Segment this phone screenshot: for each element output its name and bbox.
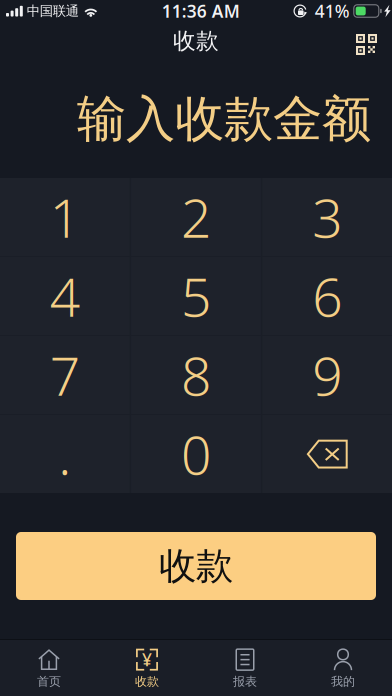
button[interactable]: 我的	[294, 638, 392, 696]
staticText: 11:36 AM	[162, 0, 240, 22]
button[interactable]: 首页	[0, 638, 98, 696]
button[interactable]: 8	[131, 336, 261, 414]
button[interactable]: ¥	[98, 638, 196, 696]
staticText: 8	[181, 340, 211, 410]
button[interactable]: 7	[0, 336, 130, 414]
staticText: 首页	[37, 674, 61, 689]
button[interactable]: 3	[262, 178, 392, 256]
button[interactable]: 1	[0, 178, 130, 256]
staticText: 1	[50, 182, 80, 252]
staticText: 收款	[135, 674, 159, 689]
button[interactable]: 5	[131, 257, 261, 335]
staticText: 3	[312, 182, 342, 252]
staticText: 7	[50, 340, 80, 410]
staticText: 我的	[331, 674, 355, 689]
staticText: .	[58, 419, 71, 489]
button[interactable]: 0	[131, 415, 261, 493]
button[interactable]: .	[0, 415, 130, 493]
staticText: 中国联通	[27, 3, 79, 19]
button[interactable]: 2	[131, 178, 261, 256]
staticText: 收款	[159, 543, 233, 589]
staticText: 5	[181, 261, 211, 331]
staticText: 输入收款金额	[77, 89, 371, 149]
button[interactable]	[262, 415, 392, 493]
staticText: 2	[181, 182, 211, 252]
button[interactable]: 扫码收款	[342, 24, 392, 58]
staticText: 报表	[233, 674, 257, 689]
staticText: 41%	[315, 0, 350, 22]
staticText: 6	[312, 261, 342, 331]
staticText: 收款	[173, 27, 219, 55]
staticText: 4	[50, 261, 80, 331]
button[interactable]: 报表	[196, 638, 294, 696]
staticText: 0	[181, 419, 211, 489]
staticText: ¥	[142, 648, 152, 671]
button[interactable]: 9	[262, 336, 392, 414]
staticText: 9	[312, 340, 342, 410]
button[interactable]: 收款	[16, 532, 376, 600]
button[interactable]: 4	[0, 257, 130, 335]
button[interactable]: 6	[262, 257, 392, 335]
